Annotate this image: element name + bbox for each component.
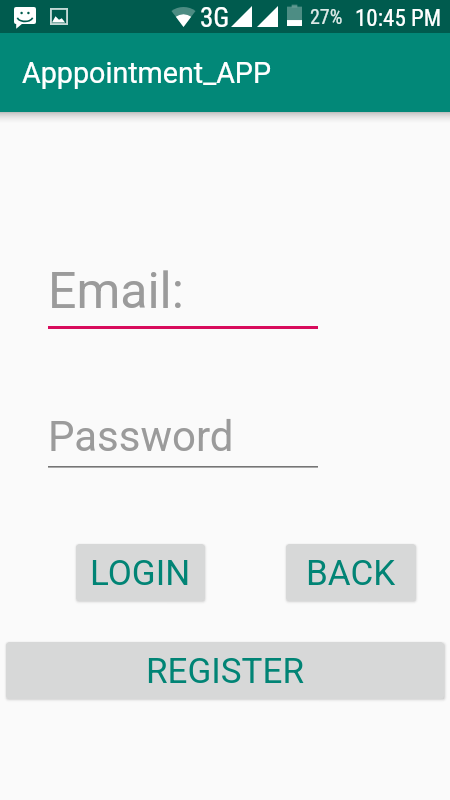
other: Screenshot (50, 8, 68, 25)
button[interactable]: Email: (48, 263, 318, 331)
button[interactable]: REGISTER (6, 642, 444, 699)
staticText: BACK (306, 553, 396, 594)
staticText: 27% (310, 5, 343, 28)
staticText: Password (48, 412, 234, 461)
other: Wi-Fi (172, 7, 195, 27)
staticText: LOGIN (90, 553, 191, 594)
staticText: 3G (200, 2, 230, 34)
other: Signal strength SIM 1 (231, 6, 252, 27)
staticText: Email: (48, 262, 184, 321)
button[interactable]: LOGIN (76, 544, 205, 601)
staticText: REGISTER (146, 651, 304, 692)
other: Battery 27 percent (287, 4, 302, 26)
staticText: Apppointment_APP (22, 56, 272, 90)
staticText: 10:45 PM (355, 5, 442, 32)
button[interactable]: Password (48, 406, 318, 468)
button[interactable]: BACK (286, 544, 416, 601)
other: Messages (14, 7, 36, 29)
other: Signal strength SIM 2 (257, 6, 278, 27)
